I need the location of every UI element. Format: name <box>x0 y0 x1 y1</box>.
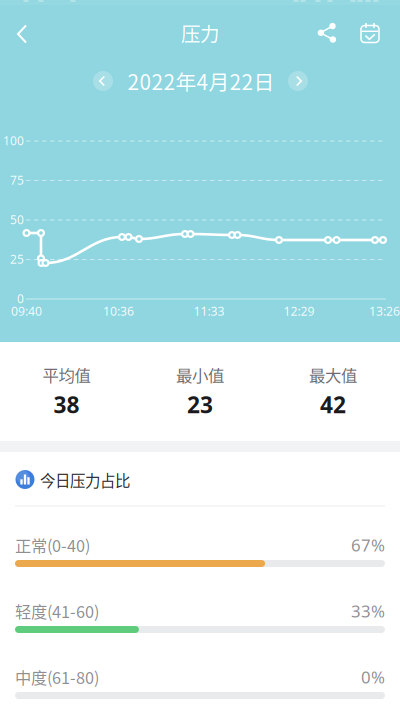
staticText: 平均值 <box>42 363 90 386</box>
staticText: 10:36 <box>103 303 134 319</box>
staticText: 轻度(41-60) <box>15 599 99 623</box>
staticText: 12:29 <box>283 303 314 319</box>
staticText: 最大值 <box>309 363 357 386</box>
staticText: 正常(0-40) <box>15 533 90 557</box>
staticText: 50 <box>10 211 24 228</box>
staticText: 最小值 <box>176 363 224 386</box>
staticText: 33% <box>351 600 385 622</box>
staticText: 25 <box>10 251 24 267</box>
button[interactable]: Back <box>0 12 44 56</box>
staticText: 2022年4月22日 <box>127 66 274 96</box>
button[interactable]: Next day <box>284 67 312 95</box>
staticText: 今日压力占比 <box>40 469 130 491</box>
staticText: 38 <box>53 389 79 420</box>
staticText: 42 <box>320 389 346 420</box>
staticText: 0 <box>17 290 24 307</box>
staticText: 中度(61-80) <box>15 665 99 689</box>
button[interactable]: Previous day <box>89 67 117 95</box>
staticText: 0% <box>361 666 385 688</box>
staticText: 100 <box>3 132 24 149</box>
staticText: 13:26 <box>369 303 400 319</box>
staticText: 11:33 <box>193 303 224 319</box>
button[interactable]: Share <box>307 11 347 55</box>
staticText: 压力 <box>181 19 219 47</box>
staticText: 67% <box>351 534 385 556</box>
staticText: 75 <box>10 172 24 188</box>
staticText: 23 <box>187 389 213 420</box>
button[interactable]: Select date <box>350 11 390 55</box>
staticText: 09:40 <box>11 303 42 319</box>
